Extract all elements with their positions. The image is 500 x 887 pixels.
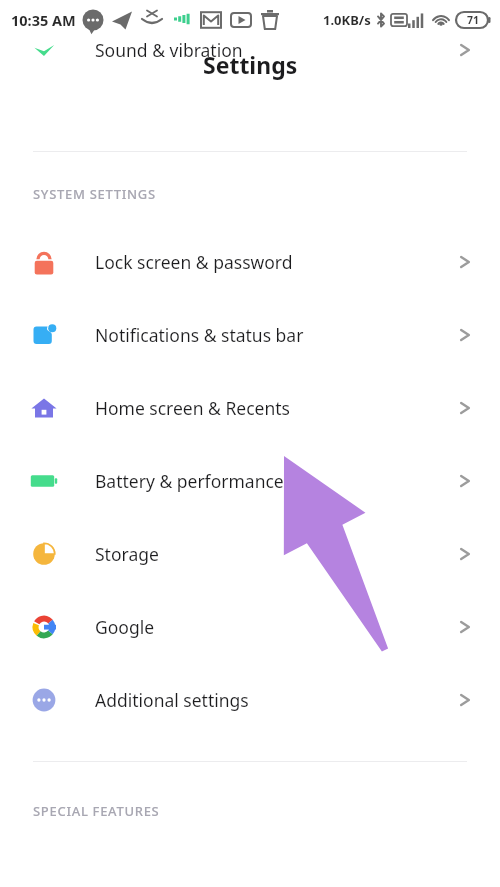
staticText: Battery & performance xyxy=(95,469,284,493)
button[interactable]: Home screen & Recents xyxy=(0,371,500,444)
button[interactable]: Google xyxy=(0,590,500,663)
staticText: Lock screen & password xyxy=(95,250,293,274)
staticText: Notifications & status bar xyxy=(95,323,304,347)
staticText: 10:35 AM xyxy=(11,10,76,30)
staticText: SPECIAL FEATURES xyxy=(33,802,160,820)
staticText: 1.0KB/s xyxy=(323,11,371,29)
staticText: Storage xyxy=(95,542,159,566)
staticText: Google xyxy=(95,615,155,639)
staticText: Home screen & Recents xyxy=(95,396,291,420)
staticText: Sound & vibration xyxy=(95,38,243,61)
staticText: SYSTEM SETTINGS xyxy=(33,185,156,203)
staticText: 71 xyxy=(467,13,480,27)
button[interactable]: Battery & performance xyxy=(0,444,500,517)
staticText: Settings xyxy=(203,49,298,80)
button[interactable]: Storage xyxy=(0,517,500,590)
button[interactable]: Additional settings xyxy=(0,663,500,736)
button[interactable]: Notifications & status bar xyxy=(0,298,500,371)
staticText: Additional settings xyxy=(95,688,249,712)
button[interactable]: Lock screen & password xyxy=(0,225,500,298)
